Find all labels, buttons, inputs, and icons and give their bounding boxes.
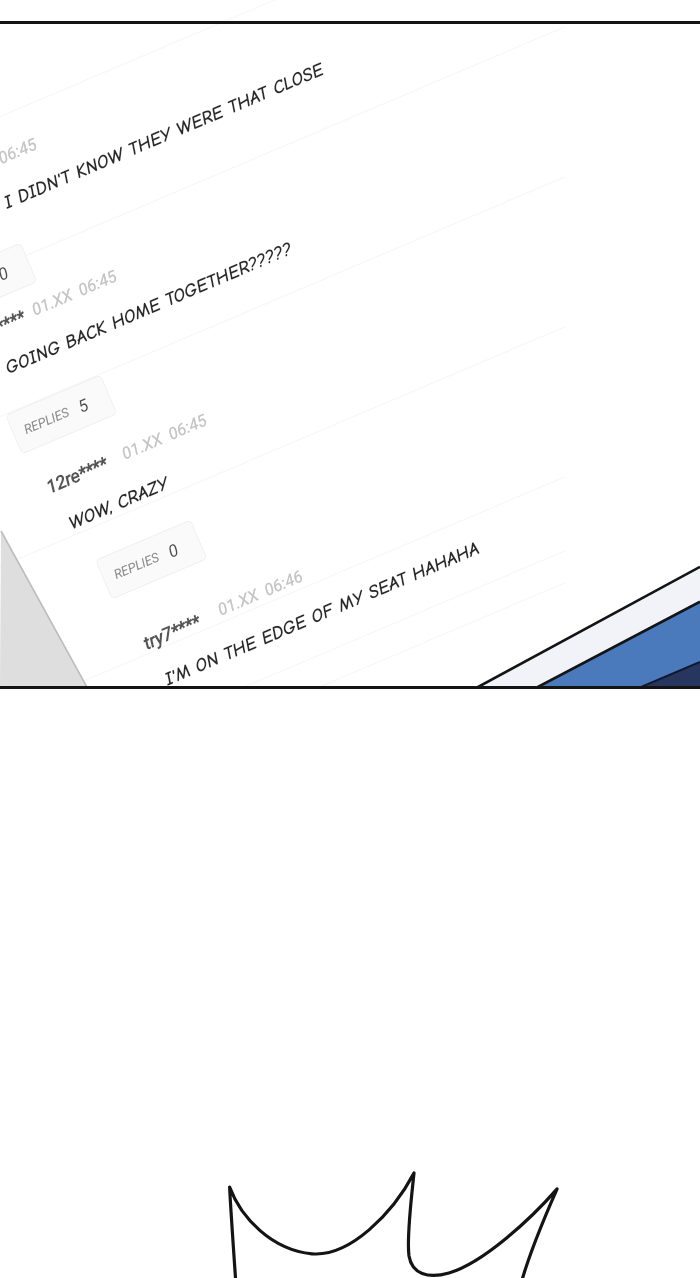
staticText: REPLIES: [111, 549, 161, 582]
staticText: 12re****: [43, 453, 111, 497]
staticText: 01.XX 06:46: [215, 566, 306, 619]
button[interactable]: [0, 51, 621, 463]
staticText: 01.XX 06:45: [29, 266, 120, 319]
staticText: REPLIES: [21, 404, 71, 437]
staticText: 0: [0, 262, 12, 285]
staticText: 0: [165, 539, 182, 562]
staticText: try7****: [140, 611, 203, 653]
staticText: I'M ON THE EDGE OF MY SEAT HAHAHA: [161, 537, 483, 688]
button[interactable]: [0, 0, 541, 331]
staticText: 01.XX 06:45: [119, 410, 210, 463]
button[interactable]: [104, 351, 700, 688]
button[interactable]: REPLIES: [5, 374, 117, 455]
staticText: wk92****: [0, 306, 28, 353]
button[interactable]: REPLIES: [95, 519, 207, 600]
staticText: SO GOING BACK HOME TOGETHER?????: [0, 237, 296, 390]
staticText: 5: [75, 394, 92, 417]
button[interactable]: [8, 195, 700, 607]
button[interactable]: REPLIES: [0, 242, 37, 323]
staticText: WOW, CRAZY: [65, 472, 172, 534]
staticText: WAIT WHAT? I DIDN'T KNOW THEY WERE THAT …: [0, 58, 327, 258]
staticText: 01.XX 06:45: [0, 134, 40, 187]
